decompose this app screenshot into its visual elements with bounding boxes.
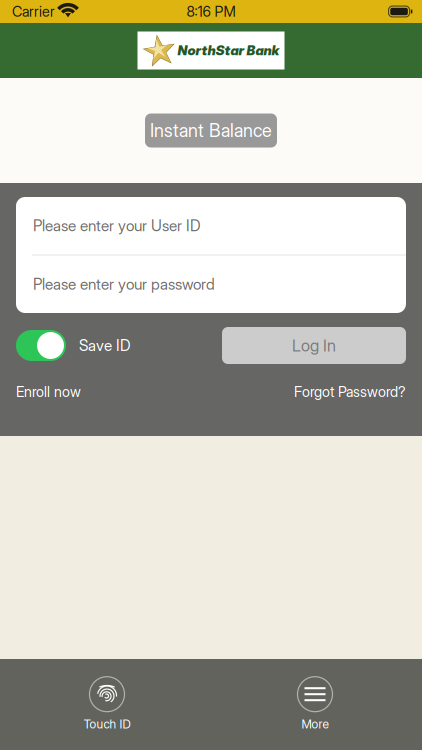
staticText: 8:16 PM <box>186 3 235 20</box>
staticText: Forgot Password? <box>294 383 406 400</box>
staticText: NorthStar Bank <box>177 42 279 58</box>
button[interactable]: Forgot Password? <box>294 383 406 400</box>
staticText: More <box>301 717 328 731</box>
staticText: Please enter your User ID <box>33 216 201 235</box>
button[interactable]: More <box>272 678 358 738</box>
staticText: Carrier <box>12 3 55 20</box>
button[interactable]: Touch ID <box>64 678 150 738</box>
staticText: Save ID <box>79 336 131 355</box>
staticText: Please enter your password <box>33 275 215 294</box>
staticText: Instant Balance <box>150 120 272 141</box>
staticText: Touch ID <box>83 717 130 731</box>
button[interactable]: Enroll now <box>16 383 81 400</box>
button[interactable]: Save ID <box>16 330 131 361</box>
button[interactable]: Instant Balance <box>145 113 277 147</box>
staticText: Enroll now <box>16 383 81 400</box>
staticText: Log In <box>292 336 336 355</box>
button[interactable]: Log In <box>222 327 406 364</box>
